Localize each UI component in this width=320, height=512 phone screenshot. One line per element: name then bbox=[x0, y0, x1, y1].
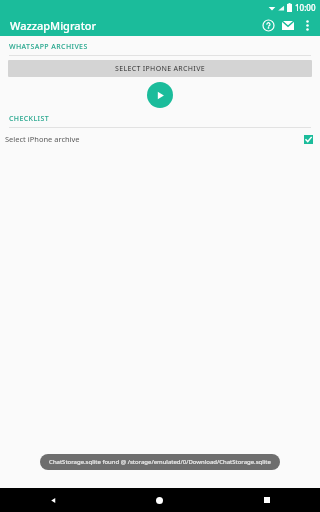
staticText: CHECKLIST bbox=[9, 114, 50, 124]
button[interactable]: Help bbox=[258, 15, 278, 35]
staticText: 10:00 bbox=[295, 2, 316, 13]
button[interactable]: SELECT IPHONE ARCHIVE bbox=[8, 60, 312, 77]
button[interactable]: Recent apps bbox=[213, 488, 320, 512]
staticText: ChatStorage.sqlite found @ /storage/emul… bbox=[49, 458, 271, 466]
button[interactable]: Select iPhone archive bbox=[0, 131, 320, 147]
button[interactable]: Back bbox=[0, 488, 106, 512]
staticText: WazzapMigrator bbox=[10, 18, 97, 33]
button[interactable]: Email bbox=[278, 15, 298, 35]
staticText: SELECT IPHONE ARCHIVE bbox=[115, 64, 205, 74]
button[interactable]: More options bbox=[298, 16, 316, 34]
button[interactable]: Start migration bbox=[147, 82, 173, 108]
staticText: Select iPhone archive bbox=[5, 134, 80, 144]
button[interactable]: Home bbox=[106, 488, 213, 512]
staticText: WHATSAPP ARCHIVES bbox=[9, 42, 88, 52]
